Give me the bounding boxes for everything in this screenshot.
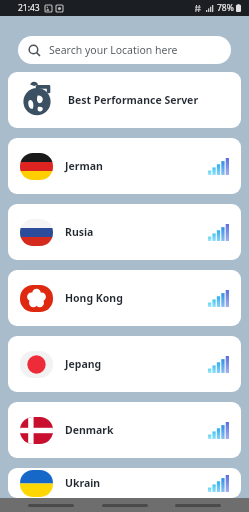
staticText: Rusia: [65, 225, 94, 239]
button[interactable]: Jerman: [8, 138, 241, 194]
staticText: Best Performance Server: [68, 93, 199, 107]
button[interactable]: Best Performance Server: [8, 72, 241, 128]
staticText: 21:43: [18, 2, 40, 14]
staticText: Ukrain: [65, 476, 101, 490]
button[interactable]: Rusia: [8, 204, 241, 260]
staticText: Jerman: [65, 159, 103, 173]
staticText: Jepang: [65, 357, 102, 371]
staticText: 78%: [217, 2, 234, 14]
staticText: Denmark: [65, 423, 114, 437]
staticText: Search your Location here: [49, 43, 178, 57]
button[interactable]: Ukrain: [8, 468, 241, 498]
button[interactable]: Hong Kong: [8, 270, 241, 326]
button[interactable]: Jepang: [8, 336, 241, 392]
staticText: Hong Kong: [65, 291, 123, 305]
button[interactable]: Denmark: [8, 402, 241, 458]
button[interactable]: Search your Location here: [18, 36, 231, 64]
